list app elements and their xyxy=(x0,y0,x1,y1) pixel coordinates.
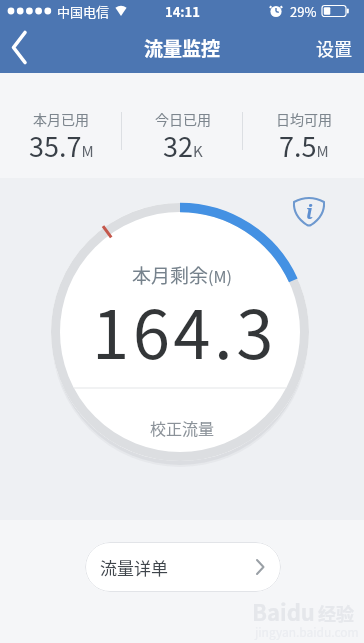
staticText: 32K xyxy=(163,126,203,165)
staticText: 7.5M xyxy=(279,126,329,165)
button[interactable]: 设置 xyxy=(316,35,364,61)
button[interactable]: 校正流量 xyxy=(142,408,223,447)
staticText: 流量监控 xyxy=(144,34,221,62)
staticText: jingyan.baidu.com xyxy=(255,623,359,640)
staticText: 14:11 xyxy=(165,2,200,21)
staticText: 经验 xyxy=(318,600,354,626)
button[interactable]: 流量详单 xyxy=(85,542,281,592)
button[interactable]: i xyxy=(290,192,328,230)
staticText: Baidu xyxy=(252,595,315,627)
staticText: 流量详单 xyxy=(100,555,168,580)
staticText: 本月剩余(M) xyxy=(132,261,232,289)
staticText: 29% xyxy=(290,2,317,21)
staticText: 35.7M xyxy=(29,126,94,165)
staticText: 日均可用 xyxy=(276,109,332,129)
staticText: 中国电信 xyxy=(57,2,110,21)
staticText: 今日已用 xyxy=(155,109,211,129)
staticText: i xyxy=(306,199,313,225)
staticText: 本月已用 xyxy=(33,109,89,129)
staticText: 设置 xyxy=(316,35,352,61)
staticText: 164.3 xyxy=(92,281,277,378)
staticText: 校正流量 xyxy=(150,416,215,439)
button[interactable] xyxy=(0,22,44,73)
